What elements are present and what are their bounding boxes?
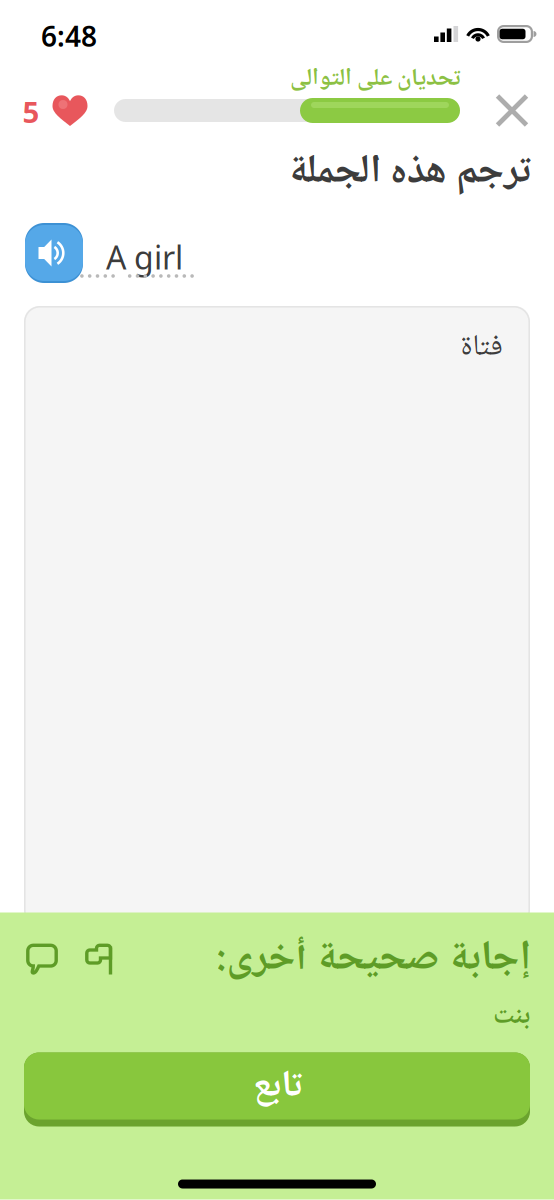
staticText: بنت — [492, 998, 529, 1035]
staticText: فتاة — [460, 327, 502, 367]
staticText: تابع — [252, 1061, 301, 1111]
staticText: تحديان على التوالى — [289, 62, 460, 95]
staticText: ترجم هذه الجملة — [287, 145, 530, 199]
staticText: 5 — [22, 92, 39, 131]
staticText: 6:48 — [41, 17, 97, 55]
staticText: إجابة صحيحة أخرى: — [215, 930, 531, 987]
button[interactable]: Report — [76, 934, 122, 984]
staticText: A girl — [106, 236, 183, 278]
button[interactable]: Close — [483, 81, 541, 139]
button[interactable]: Play audio — [25, 223, 83, 283]
button[interactable]: تابع — [24, 1052, 530, 1126]
button[interactable]: Comment — [17, 934, 67, 984]
